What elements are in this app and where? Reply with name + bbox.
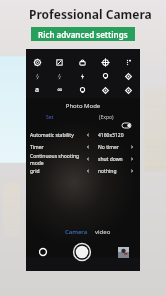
staticText: shut down — [98, 156, 123, 163]
button[interactable]: Flash on — [71, 69, 94, 83]
button[interactable]: Focus — [94, 55, 117, 69]
button[interactable]: HDR — [48, 55, 71, 69]
staticText: video — [95, 228, 111, 236]
button[interactable]: White balance — [94, 69, 117, 83]
button[interactable]: Flash auto — [48, 69, 71, 83]
button[interactable]: Lock — [71, 55, 94, 69]
button[interactable]: Continuous shooting mode — [26, 153, 140, 165]
staticText: nothing — [98, 168, 117, 175]
staticText: Photo Mode — [26, 102, 140, 110]
staticText: Rich advanced settings — [38, 29, 128, 40]
button[interactable]: grid — [26, 165, 140, 177]
staticText: grid — [30, 168, 40, 175]
button[interactable]: Switch camera — [37, 246, 49, 258]
staticText: (Expo) — [99, 114, 114, 121]
staticText: No timer — [98, 144, 119, 151]
button[interactable]: Gallery — [118, 247, 129, 258]
button[interactable]: Camera — [64, 228, 89, 236]
button[interactable]: Timer — [26, 141, 140, 153]
staticText: Automatic stability — [30, 132, 74, 139]
staticText: 4160x3120 — [98, 132, 124, 139]
staticText: Set — [46, 114, 54, 121]
staticText: ∞ — [57, 86, 63, 94]
button[interactable]: Exposure — [117, 69, 140, 83]
button[interactable]: Toggle — [122, 123, 131, 128]
button[interactable]: Automatic stability — [26, 129, 140, 141]
button[interactable]: video — [94, 228, 112, 236]
staticText: Camera — [65, 228, 88, 236]
button[interactable]: Rich advanced settings — [31, 27, 135, 41]
button[interactable]: a — [26, 83, 48, 97]
staticText: Timer — [30, 144, 44, 151]
button[interactable]: More — [117, 55, 140, 69]
button[interactable]: Shutter — [73, 243, 91, 261]
button[interactable]: ISO — [94, 83, 117, 97]
button[interactable]: EV — [117, 83, 140, 97]
button[interactable]: ∞ — [48, 83, 71, 97]
staticText: Continuous shooting mode — [30, 153, 86, 165]
staticText: Professional Camera — [29, 6, 152, 22]
button[interactable]: Flash off — [26, 69, 48, 83]
staticText: a — [35, 85, 40, 95]
button[interactable]: Settings — [26, 55, 48, 69]
button[interactable]: Scene — [71, 83, 94, 97]
